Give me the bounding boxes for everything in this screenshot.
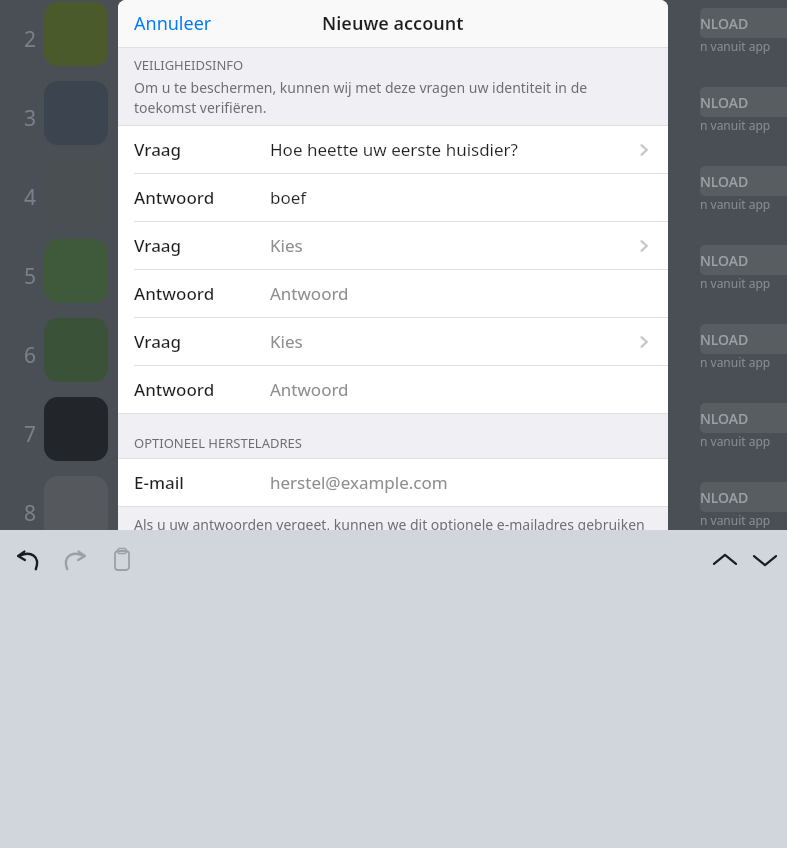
staticText: Hoe heette uw eerste huisdier? [270, 138, 636, 161]
staticText: Annuleer [134, 11, 212, 36]
staticText: 8 [24, 499, 37, 528]
staticText: Vraag [134, 330, 182, 353]
button[interactable]: Redo [55, 540, 95, 580]
staticText: E-mail [134, 471, 184, 494]
button[interactable]: Vraag [118, 222, 668, 269]
staticText: NLOAD [700, 488, 749, 507]
staticText: 2 [24, 25, 37, 54]
staticText: 3 [24, 104, 37, 133]
staticText: n vanuit app [700, 117, 771, 133]
staticText: Kies [270, 330, 636, 353]
staticText: boef [270, 186, 636, 209]
staticText: NLOAD [700, 93, 749, 112]
staticText: n vanuit app [700, 433, 771, 449]
staticText: NLOAD [700, 172, 749, 191]
button[interactable]: Vraag [118, 126, 668, 173]
staticText: Om u te beschermen, kunnen wij met deze … [134, 78, 652, 117]
staticText: n vanuit app [700, 196, 771, 212]
button[interactable]: Antwoord [118, 270, 668, 317]
button[interactable]: E-mail [118, 459, 668, 506]
staticText: VEILIGHEIDSINFO [134, 56, 244, 74]
staticText: NLOAD [700, 14, 749, 33]
button[interactable]: Next field [745, 540, 785, 580]
staticText: n vanuit app [700, 354, 771, 370]
staticText: 7 [24, 420, 37, 449]
staticText: NLOAD [700, 251, 749, 270]
staticText: n vanuit app [700, 512, 771, 528]
staticText: Antwoord [134, 186, 215, 209]
button[interactable]: Undo [8, 540, 48, 580]
staticText: NLOAD [700, 330, 749, 349]
staticText: NLOAD [700, 409, 749, 428]
button[interactable]: Annuleer [118, 1, 228, 46]
staticText: n vanuit app [700, 38, 771, 54]
staticText: 5 [24, 262, 37, 291]
staticText: Antwoord [134, 282, 215, 305]
button[interactable]: Vraag [118, 318, 668, 365]
staticText: Antwoord [270, 282, 636, 305]
button[interactable]: Paste [102, 540, 142, 580]
button[interactable]: Previous field [705, 540, 745, 580]
staticText: Nieuwe account [322, 11, 464, 36]
staticText: 4 [24, 183, 37, 212]
button[interactable]: Antwoord [118, 366, 668, 413]
staticText: Kies [270, 234, 636, 257]
staticText: n vanuit app [700, 275, 771, 291]
staticText: Als u uw antwoorden vergeet, kunnen we d… [134, 515, 645, 530]
staticText: Vraag [134, 234, 182, 257]
staticText: Antwoord [134, 378, 215, 401]
staticText: 6 [24, 341, 37, 370]
staticText: Antwoord [270, 378, 636, 401]
staticText: Vraag [134, 138, 182, 161]
staticText: OPTIONEEL HERSTELADRES [134, 434, 302, 452]
staticText: herstel@example.com [270, 471, 636, 494]
button[interactable]: Antwoord [118, 174, 668, 221]
